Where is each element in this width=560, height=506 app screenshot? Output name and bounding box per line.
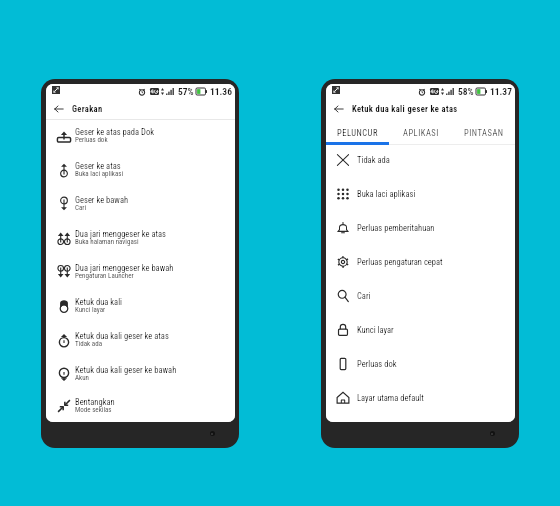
- button[interactable]: Geser ke atas pada Dok: [46, 120, 235, 154]
- button[interactable]: APLIKASI: [389, 119, 452, 145]
- button[interactable]: Perluas dok: [326, 347, 515, 381]
- other: Back: [334, 104, 344, 114]
- staticText: Ketuk dua kali geser ke atas: [75, 331, 169, 341]
- button[interactable]: Geser ke bawah: [46, 188, 235, 222]
- staticText: Perluas pemberitahuan: [357, 223, 435, 233]
- button[interactable]: Geser ke atas: [46, 154, 235, 188]
- staticText: Kunci layar: [357, 325, 394, 335]
- button[interactable]: Back: [326, 99, 515, 119]
- staticText: Pengaturan Launcher: [75, 272, 134, 280]
- staticText: Layar utama default: [357, 393, 424, 403]
- staticText: Geser ke bawah: [75, 195, 129, 205]
- button[interactable]: Ketuk dua kali geser ke atas: [46, 324, 235, 358]
- button[interactable]: Cari: [326, 279, 515, 313]
- staticText: PINTASAN: [464, 128, 504, 138]
- staticText: 58%: [458, 86, 474, 97]
- button[interactable]: Perluas pemberitahuan: [326, 211, 515, 245]
- staticText: Cari: [75, 204, 87, 212]
- button[interactable]: Dua jari menggeser ke atas: [46, 222, 235, 256]
- button[interactable]: Ketuk dua kali geser ke bawah: [46, 358, 235, 392]
- staticText: Perluas dok: [357, 359, 397, 369]
- button[interactable]: Tidak ada: [326, 143, 515, 177]
- button[interactable]: Layar utama default: [326, 381, 515, 415]
- button[interactable]: Bentangkan: [46, 392, 235, 422]
- other: Back: [54, 104, 64, 114]
- staticText: Perluas pengaturan cepat: [357, 257, 443, 267]
- staticText: Tidak ada: [357, 155, 390, 165]
- button[interactable]: Kunci layar: [326, 313, 515, 347]
- staticText: 11.37: [490, 86, 512, 97]
- staticText: 57%: [178, 86, 194, 97]
- staticText: Buka halaman navigasi: [75, 238, 139, 246]
- staticText: Gerakan: [72, 104, 103, 114]
- staticText: Tidak ada: [75, 340, 103, 348]
- staticText: Ketuk dua kali geser ke bawah: [75, 365, 177, 375]
- button[interactable]: PELUNCUR: [326, 119, 389, 145]
- button[interactable]: Ketuk dua kali: [46, 290, 235, 324]
- staticText: Buka laci aplikasi: [357, 189, 416, 199]
- staticText: Buka laci aplikasi: [75, 170, 124, 178]
- button[interactable]: PINTASAN: [452, 119, 515, 145]
- staticText: Perluas dok: [75, 136, 108, 144]
- staticText: Dua jari menggeser ke atas: [75, 229, 166, 239]
- button[interactable]: Buka laci aplikasi: [326, 177, 515, 211]
- staticText: Kunci layar: [75, 306, 106, 314]
- button[interactable]: Perluas pengaturan cepat: [326, 245, 515, 279]
- staticText: Mode sekilas: [75, 406, 112, 414]
- staticText: APLIKASI: [403, 128, 439, 138]
- button[interactable]: Back: [46, 99, 235, 119]
- staticText: Bentangkan: [75, 397, 115, 407]
- staticText: 11.36: [210, 86, 232, 97]
- staticText: Geser ke atas: [75, 161, 121, 171]
- staticText: Cari: [357, 291, 371, 301]
- staticText: Dua jari menggeser ke bawah: [75, 263, 174, 273]
- staticText: Ketuk dua kali geser ke atas: [352, 104, 458, 114]
- staticText: Geser ke atas pada Dok: [75, 127, 155, 137]
- staticText: Ketuk dua kali: [75, 297, 123, 307]
- staticText: Akun: [75, 374, 89, 382]
- button[interactable]: Dua jari menggeser ke bawah: [46, 256, 235, 290]
- staticText: PELUNCUR: [337, 128, 378, 138]
